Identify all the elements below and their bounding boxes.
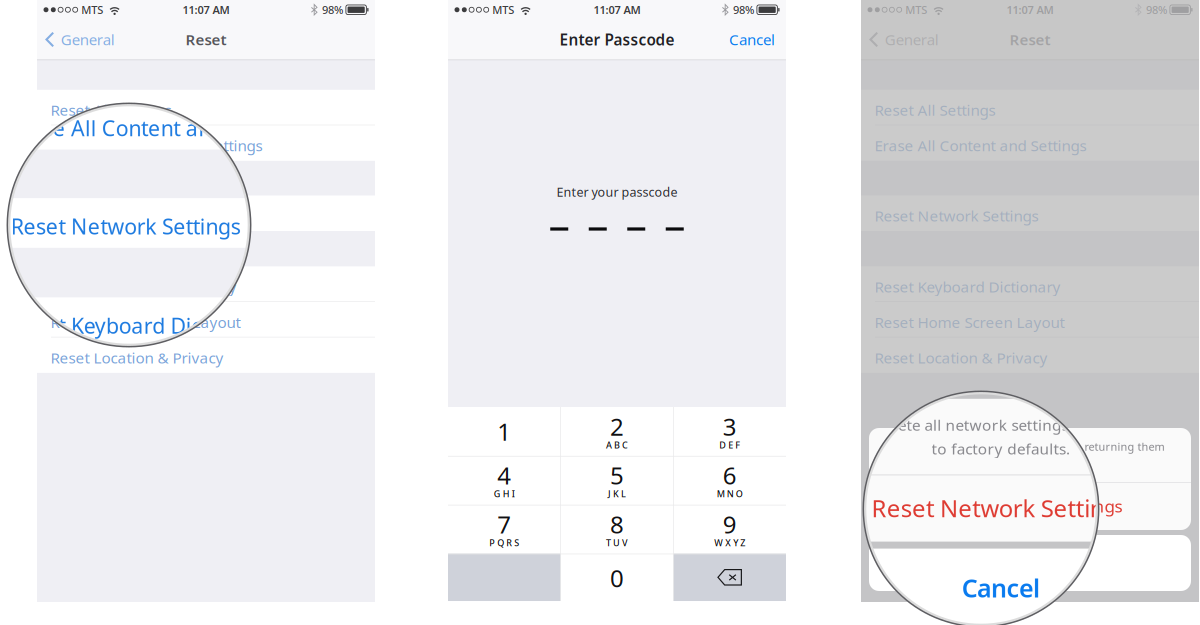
button[interactable]: 8 (561, 505, 673, 554)
staticText: Reset Home Screen Layout (45, 322, 235, 343)
button[interactable]: Reset Keyboard Dictionary (31, 277, 369, 312)
staticText: 11:07 AM (182, 2, 229, 17)
staticText: Reset Network Settings (875, 205, 1039, 226)
staticText: Reset Location & Privacy (840, 349, 1013, 370)
staticText: MTS (905, 2, 927, 17)
staticText: 9 (723, 508, 737, 540)
staticText: Reset All Settings (45, 110, 166, 131)
button[interactable]: General (826, 22, 938, 62)
button[interactable]: Reset Location & Privacy (37, 337, 375, 373)
button[interactable]: General (37, 19, 149, 59)
staticText: Reset (1009, 29, 1050, 50)
button[interactable]: Reset Keyboard Dictionary (37, 266, 375, 302)
staticText: Erase All Content and Settings (840, 137, 1052, 158)
button[interactable]: Reset Location & Privacy (826, 340, 1164, 375)
button[interactable]: 9 (673, 505, 786, 554)
staticText: Reset Location & Privacy (51, 347, 224, 368)
staticText: 2 (610, 410, 624, 443)
staticText: 3 (723, 410, 737, 443)
staticText: 4 (497, 459, 511, 492)
staticText: 1 (497, 415, 511, 448)
button[interactable]: Erase All Content and Settings (31, 136, 369, 171)
button[interactable]: Erase All Content and Settings (861, 125, 1199, 161)
staticText: to factory defaults. (980, 456, 1079, 471)
button[interactable]: 5 (561, 456, 673, 505)
staticText: Reset Keyboard Dictionary (51, 276, 237, 297)
staticText: Reset Home Screen Layout (51, 312, 241, 332)
button[interactable]: 6 (673, 456, 786, 505)
staticText: Erase All Content and Settings (875, 135, 1087, 156)
button[interactable]: Reset Network Settings (826, 198, 1164, 233)
staticText: 7 (497, 508, 511, 540)
button[interactable]: Reset Home Screen Layout (31, 312, 369, 348)
button[interactable]: 7 (448, 505, 561, 554)
button[interactable]: Reset Location & Privacy (31, 348, 369, 383)
button[interactable]: Cancel (869, 535, 1191, 591)
button[interactable]: Reset Network Settings (31, 206, 369, 241)
staticText: Erase All Content and Settings (45, 145, 257, 166)
button[interactable]: General (861, 19, 973, 59)
staticText: Reset Location & Privacy (45, 357, 218, 378)
button[interactable]: Reset Network Settings (834, 484, 1156, 532)
button[interactable]: Reset Network Settings (861, 195, 1199, 231)
staticText: Reset Network Settings (840, 208, 1004, 228)
button[interactable]: Reset All Settings (31, 100, 369, 136)
staticText: Reset Network Settings (51, 205, 215, 226)
staticText: Reset Home Screen Layout (875, 312, 1065, 332)
staticText: Reset (975, 31, 1016, 52)
button[interactable]: Reset Network Settings (37, 195, 375, 231)
button[interactable]: Cancel (676, 19, 786, 59)
button[interactable]: Cancel (834, 537, 1156, 593)
button[interactable]: 3 (673, 407, 786, 456)
staticText: MTS (492, 2, 514, 17)
staticText: Reset Keyboard Dictionary (875, 276, 1061, 297)
button[interactable]: Reset Network Settings (869, 482, 1191, 530)
button[interactable]: Reset Home Screen Layout (37, 302, 375, 337)
staticText: Reset (179, 39, 220, 60)
staticText: 0 (610, 562, 624, 594)
button[interactable]: Reset Keyboard Dictionary (861, 266, 1199, 302)
staticText: Reset Keyboard Dictionary (840, 278, 1026, 299)
staticText: A B C (606, 439, 628, 451)
staticText: Enter Passcode (559, 29, 674, 50)
staticText: Erase All Content and Settings (51, 135, 263, 156)
staticText: Reset Home Screen Layout (840, 314, 1030, 335)
button[interactable]: Reset Home Screen Layout (861, 302, 1199, 337)
staticText: 11:07 AM (972, 4, 1019, 20)
staticText: 11:07 AM (176, 12, 223, 28)
staticText: MTS (81, 2, 103, 17)
staticText: Reset (185, 29, 226, 50)
staticText: 98% (316, 12, 337, 28)
staticText: This will delete all network settings, r… (895, 439, 1164, 454)
staticText: General (850, 31, 904, 52)
button[interactable]: Reset All Settings (37, 90, 375, 125)
staticText: T U V (606, 536, 628, 549)
staticText: Reset Network Settings (937, 494, 1122, 518)
button[interactable]: 0 (561, 554, 673, 602)
button[interactable]: Reset Location & Privacy (861, 337, 1199, 373)
staticText: Reset All Settings (840, 102, 961, 123)
button[interactable]: Reset Home Screen Layout (826, 304, 1164, 340)
staticText: General (61, 29, 115, 50)
button[interactable]: Reset All Settings (826, 92, 1164, 128)
staticText: This will delete all network settings, r… (861, 441, 1130, 456)
staticText: 11:07 AM (1006, 2, 1053, 17)
button[interactable]: 4 (448, 456, 561, 505)
staticText: D E F (719, 439, 740, 451)
button[interactable]: General (31, 30, 143, 70)
staticText: W X Y Z (714, 536, 745, 549)
staticText: 5 (610, 459, 624, 492)
button[interactable]: Delete (673, 554, 786, 601)
button[interactable]: 1 (448, 407, 561, 456)
staticText: Reset Network Settings (903, 497, 1088, 520)
button[interactable]: Reset All Settings (861, 90, 1199, 125)
staticText: 8 (610, 508, 624, 540)
staticText: Cancel (729, 29, 775, 50)
button[interactable]: Erase All Content and Settings (37, 125, 375, 161)
staticText: MTS (75, 12, 97, 28)
button[interactable]: Reset Keyboard Dictionary (826, 269, 1164, 304)
button[interactable]: Erase All Content and Settings (826, 128, 1164, 163)
button[interactable]: 2 (561, 407, 673, 456)
